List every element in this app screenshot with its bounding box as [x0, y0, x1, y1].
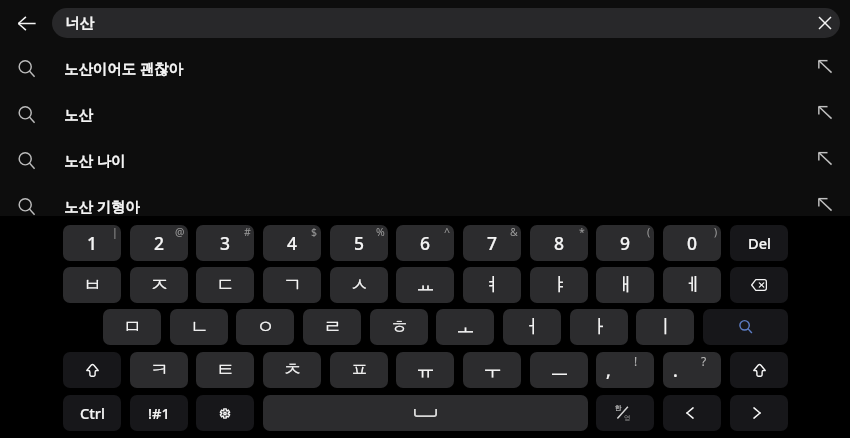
button[interactable]: 너산 [52, 8, 840, 38]
staticText: 4 [287, 231, 298, 255]
staticText: ㅐ [616, 273, 635, 297]
button[interactable]: Search [703, 309, 788, 345]
button[interactable]: Shift [730, 352, 788, 388]
button[interactable]: ㅣ [636, 309, 694, 345]
staticText: 노산이어도 괜찮아 [64, 59, 183, 79]
staticText: 노산 기형아 [64, 197, 140, 217]
staticText: Ctrl [80, 403, 105, 423]
button[interactable]: ㅑ [530, 267, 588, 303]
button[interactable]: ㅕ [463, 267, 521, 303]
button[interactable]: 9 [596, 225, 654, 261]
button[interactable]: 노산 [0, 92, 850, 138]
staticText: ㄷ [216, 273, 235, 297]
button[interactable]: Move cursor right [730, 395, 788, 431]
button[interactable]: 6 [396, 225, 454, 261]
button[interactable]: ㅌ [196, 352, 254, 388]
button[interactable]: !#1 [130, 395, 188, 431]
staticText: ㅇ [256, 315, 275, 339]
button[interactable]: Del [730, 225, 788, 261]
button[interactable]: Back [7, 3, 47, 43]
button[interactable]: Backspace [730, 267, 788, 303]
button[interactable]: ㅍ [330, 352, 388, 388]
staticText: ( [647, 225, 651, 239]
staticText: 한 [615, 404, 622, 412]
button[interactable]: ㅛ [396, 267, 454, 303]
staticText: ㅡ [550, 358, 569, 382]
button[interactable]: Use suggestion [800, 139, 850, 184]
staticText: ㅛ [416, 273, 435, 297]
staticText: 9 [620, 231, 631, 255]
button[interactable]: ㄱ [263, 267, 321, 303]
button[interactable]: Keyboard settings [196, 395, 254, 431]
staticText: ㅌ [216, 358, 235, 382]
button[interactable]: 노산 나이 [0, 138, 850, 184]
staticText: # [244, 225, 251, 239]
staticText: ㅣ [656, 315, 675, 339]
staticText: ? [701, 353, 707, 369]
button[interactable]: , [596, 352, 654, 388]
staticText: ㅁ [123, 315, 142, 339]
button[interactable]: Move cursor left [663, 395, 721, 431]
button[interactable]: Korean English toggle [596, 395, 654, 431]
button[interactable]: Use suggestion [800, 93, 850, 138]
button[interactable]: ㅐ [596, 267, 654, 303]
staticText: | [112, 225, 118, 239]
button[interactable]: ㅔ [663, 267, 721, 303]
button[interactable]: Use suggestion [800, 185, 850, 230]
staticText: * [579, 225, 585, 239]
button[interactable]: 4 [263, 225, 321, 261]
button[interactable]: 0 [663, 225, 721, 261]
button[interactable]: ㅂ [63, 267, 121, 303]
button[interactable]: ㅈ [130, 267, 188, 303]
staticText: ㅍ [350, 358, 369, 382]
button[interactable]: 5 [330, 225, 388, 261]
staticText: ㅂ [83, 273, 102, 297]
staticText: ㅅ [350, 273, 369, 297]
button[interactable]: ㅡ [530, 352, 588, 388]
button[interactable]: ㅜ [463, 352, 521, 388]
button[interactable]: 1 [63, 225, 121, 261]
staticText: ! [634, 353, 638, 369]
staticText: @ [175, 225, 185, 239]
button[interactable]: ㅠ [396, 352, 454, 388]
button[interactable]: 노산이어도 괜찮아 [0, 46, 850, 92]
button[interactable]: ㅋ [130, 352, 188, 388]
button[interactable]: ㅎ [370, 309, 428, 345]
button[interactable]: Clear search [810, 8, 840, 38]
staticText: ㅋ [150, 358, 169, 382]
staticText: ㅜ [483, 358, 502, 382]
staticText: 6 [420, 231, 431, 255]
button[interactable]: ㅇ [236, 309, 294, 345]
button[interactable]: ㅊ [263, 352, 321, 388]
staticText: ㅈ [150, 273, 169, 297]
button[interactable]: Use suggestion [800, 47, 850, 92]
button[interactable]: ㅁ [103, 309, 161, 345]
button[interactable]: 7 [463, 225, 521, 261]
staticText: ㅔ [683, 273, 702, 297]
button[interactable]: ㅓ [503, 309, 561, 345]
staticText: 1 [87, 231, 98, 255]
button[interactable]: ㄷ [196, 267, 254, 303]
button[interactable]: 8 [530, 225, 588, 261]
button[interactable]: 노산 기형아 [0, 184, 850, 230]
button[interactable]: Ctrl [63, 395, 121, 431]
staticText: , [606, 358, 611, 382]
staticText: 노산 [64, 106, 93, 124]
button[interactable]: ㄹ [303, 309, 361, 345]
staticText: ㅗ [456, 315, 475, 339]
button[interactable]: . [663, 352, 721, 388]
button[interactable]: ㄴ [170, 309, 228, 345]
staticText: 7 [487, 231, 498, 255]
button[interactable]: 3 [196, 225, 254, 261]
staticText: ㅠ [416, 358, 435, 382]
button[interactable]: ㅗ [436, 309, 494, 345]
staticText: ) [714, 225, 718, 239]
button[interactable]: ㅏ [570, 309, 628, 345]
button[interactable]: ㅅ [330, 267, 388, 303]
staticText: 8 [554, 231, 565, 255]
button[interactable]: Shift [63, 352, 121, 388]
staticText: $ [311, 225, 318, 239]
button[interactable]: 2 [130, 225, 188, 261]
button[interactable]: Space [263, 395, 588, 431]
staticText: ㄹ [323, 315, 342, 339]
